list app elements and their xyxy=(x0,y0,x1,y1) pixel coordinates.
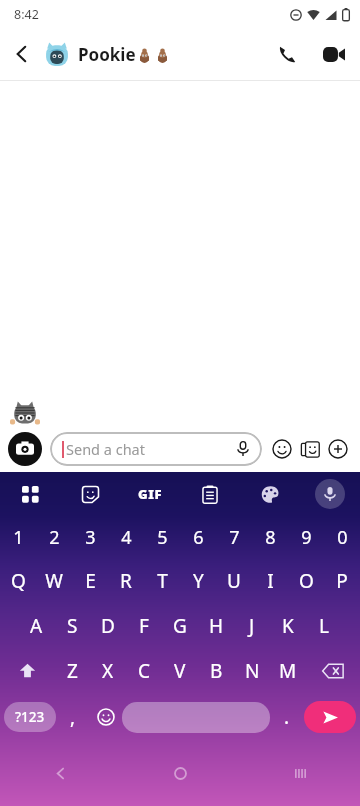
staticText: Send a chat xyxy=(66,439,228,459)
staticText: C xyxy=(138,658,151,684)
staticText: Y xyxy=(193,568,204,594)
staticText: ?123 xyxy=(15,708,45,726)
button[interactable]: 8 xyxy=(252,516,288,558)
staticText: K xyxy=(282,613,294,639)
button[interactable]: 0 xyxy=(324,516,360,558)
staticText: GIF xyxy=(138,485,163,503)
button[interactable]: J xyxy=(234,603,270,648)
button[interactable]: G xyxy=(162,603,198,648)
staticText: R xyxy=(120,568,132,594)
button[interactable]: 3 xyxy=(72,516,108,558)
button[interactable]: T xyxy=(144,558,180,603)
button[interactable]: 4 xyxy=(108,516,144,558)
button[interactable]: 5 xyxy=(144,516,180,558)
button[interactable]: S xyxy=(54,603,90,648)
button[interactable]: P xyxy=(324,558,360,603)
button[interactable]: Send xyxy=(304,701,356,733)
button[interactable]: . xyxy=(270,693,304,741)
button[interactable]: Keyboard menu xyxy=(0,472,60,516)
button[interactable]: K xyxy=(270,603,306,648)
staticText: P xyxy=(336,568,348,594)
button[interactable]: Q xyxy=(0,558,36,603)
button[interactable]: GIF xyxy=(120,472,180,516)
button[interactable]: Stickers xyxy=(268,435,296,463)
button[interactable]: 7 xyxy=(216,516,252,558)
staticText: A xyxy=(30,613,43,639)
staticText: G xyxy=(173,613,187,639)
button[interactable]: 9 xyxy=(288,516,324,558)
button[interactable]: E xyxy=(72,558,108,603)
button[interactable]: X xyxy=(90,648,126,693)
staticText: 8:42 xyxy=(14,6,39,23)
staticText: J xyxy=(249,613,255,639)
staticText: 0 xyxy=(337,525,348,550)
button[interactable]: Video call xyxy=(312,30,356,78)
staticText: 1 xyxy=(13,525,24,550)
button[interactable]: H xyxy=(198,603,234,648)
button[interactable]: 2 xyxy=(36,516,72,558)
button[interactable]: Back xyxy=(0,741,120,806)
staticText: , xyxy=(70,704,76,730)
button[interactable]: Emoji xyxy=(90,693,122,741)
button[interactable]: Home xyxy=(120,741,240,806)
button[interactable]: Camera xyxy=(8,432,42,466)
button[interactable]: Voice message xyxy=(228,434,258,464)
button[interactable]: Z xyxy=(54,648,90,693)
staticText: Z xyxy=(67,658,78,684)
button[interactable]: Bitmoji xyxy=(296,435,324,463)
button[interactable]: Stickers xyxy=(60,472,120,516)
button[interactable]: , xyxy=(56,693,90,741)
button[interactable]: U xyxy=(216,558,252,603)
button[interactable]: Themes xyxy=(240,472,300,516)
button[interactable]: L xyxy=(306,603,342,648)
button[interactable]: Shift xyxy=(0,648,54,693)
button[interactable]: 1 xyxy=(0,516,36,558)
button[interactable]: M xyxy=(270,648,306,693)
button[interactable]: Recents xyxy=(240,741,360,806)
staticText: 4 xyxy=(121,525,132,550)
staticText: V xyxy=(174,658,186,684)
button[interactable]: R xyxy=(108,558,144,603)
button[interactable]: D xyxy=(90,603,126,648)
button[interactable]: Y xyxy=(180,558,216,603)
staticText: X xyxy=(102,658,114,684)
staticText: T xyxy=(157,568,168,594)
button[interactable]: Voice input xyxy=(300,472,360,516)
staticText: Pookie xyxy=(78,43,136,66)
button[interactable]: Backspace xyxy=(306,648,360,693)
button[interactable]: I xyxy=(252,558,288,603)
button[interactable]: Call xyxy=(264,30,312,78)
button[interactable]: Clipboard xyxy=(180,472,240,516)
button[interactable]: W xyxy=(36,558,72,603)
staticText: I xyxy=(267,568,274,594)
staticText: Q xyxy=(11,568,26,594)
button[interactable]: N xyxy=(234,648,270,693)
button[interactable]: Back xyxy=(0,32,44,76)
button[interactable]: O xyxy=(288,558,324,603)
staticText: O xyxy=(299,568,314,594)
button[interactable]: Space xyxy=(122,702,270,733)
staticText: 7 xyxy=(229,525,240,550)
staticText: 8 xyxy=(265,525,276,550)
staticText: L xyxy=(319,613,329,639)
staticText: 3 xyxy=(85,525,96,550)
staticText: W xyxy=(45,568,63,594)
staticText: S xyxy=(67,613,78,639)
staticText: . xyxy=(284,704,290,730)
staticText: E xyxy=(85,568,96,594)
staticText: D xyxy=(101,613,115,639)
button[interactable]: V xyxy=(162,648,198,693)
button[interactable]: Send a chat xyxy=(50,432,262,466)
button[interactable]: More options xyxy=(324,435,352,463)
button[interactable]: F xyxy=(126,603,162,648)
staticText: M xyxy=(279,658,297,684)
staticText: F xyxy=(139,613,149,639)
button[interactable]: 6 xyxy=(180,516,216,558)
button[interactable]: ?123 xyxy=(4,702,56,732)
staticText: 6 xyxy=(193,525,204,550)
button[interactable]: A xyxy=(18,603,54,648)
button[interactable]: C xyxy=(126,648,162,693)
button[interactable]: B xyxy=(198,648,234,693)
staticText: 9 xyxy=(301,525,312,550)
button[interactable]: Pookie xyxy=(44,41,264,67)
